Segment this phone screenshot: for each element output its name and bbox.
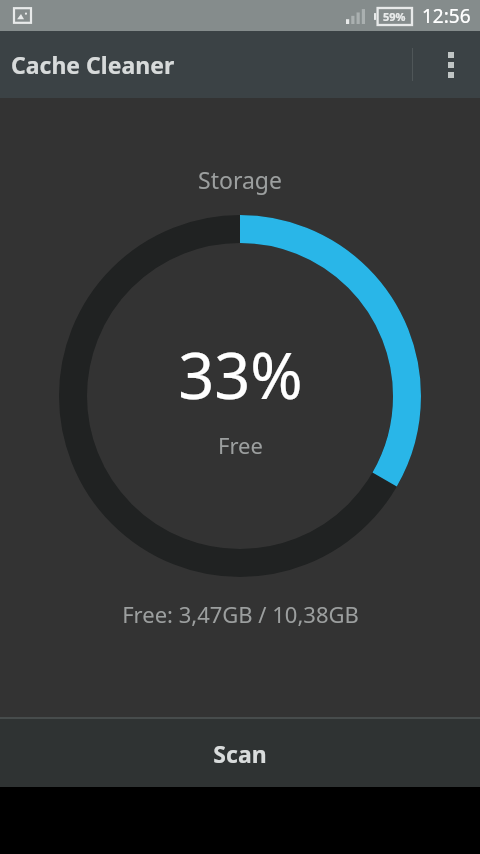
staticText: Scan	[213, 738, 267, 769]
staticText: 12:56	[422, 3, 471, 29]
staticText: 33%	[178, 332, 303, 418]
staticText: Free: 3,47GB / 10,38GB	[122, 599, 359, 629]
staticText: Storage	[198, 164, 282, 195]
staticText: 59%	[383, 9, 406, 24]
button[interactable]: More options	[422, 31, 480, 98]
staticText: Free	[218, 430, 263, 460]
button[interactable]: Scan	[0, 719, 480, 787]
staticText: Cache Cleaner	[11, 49, 175, 80]
